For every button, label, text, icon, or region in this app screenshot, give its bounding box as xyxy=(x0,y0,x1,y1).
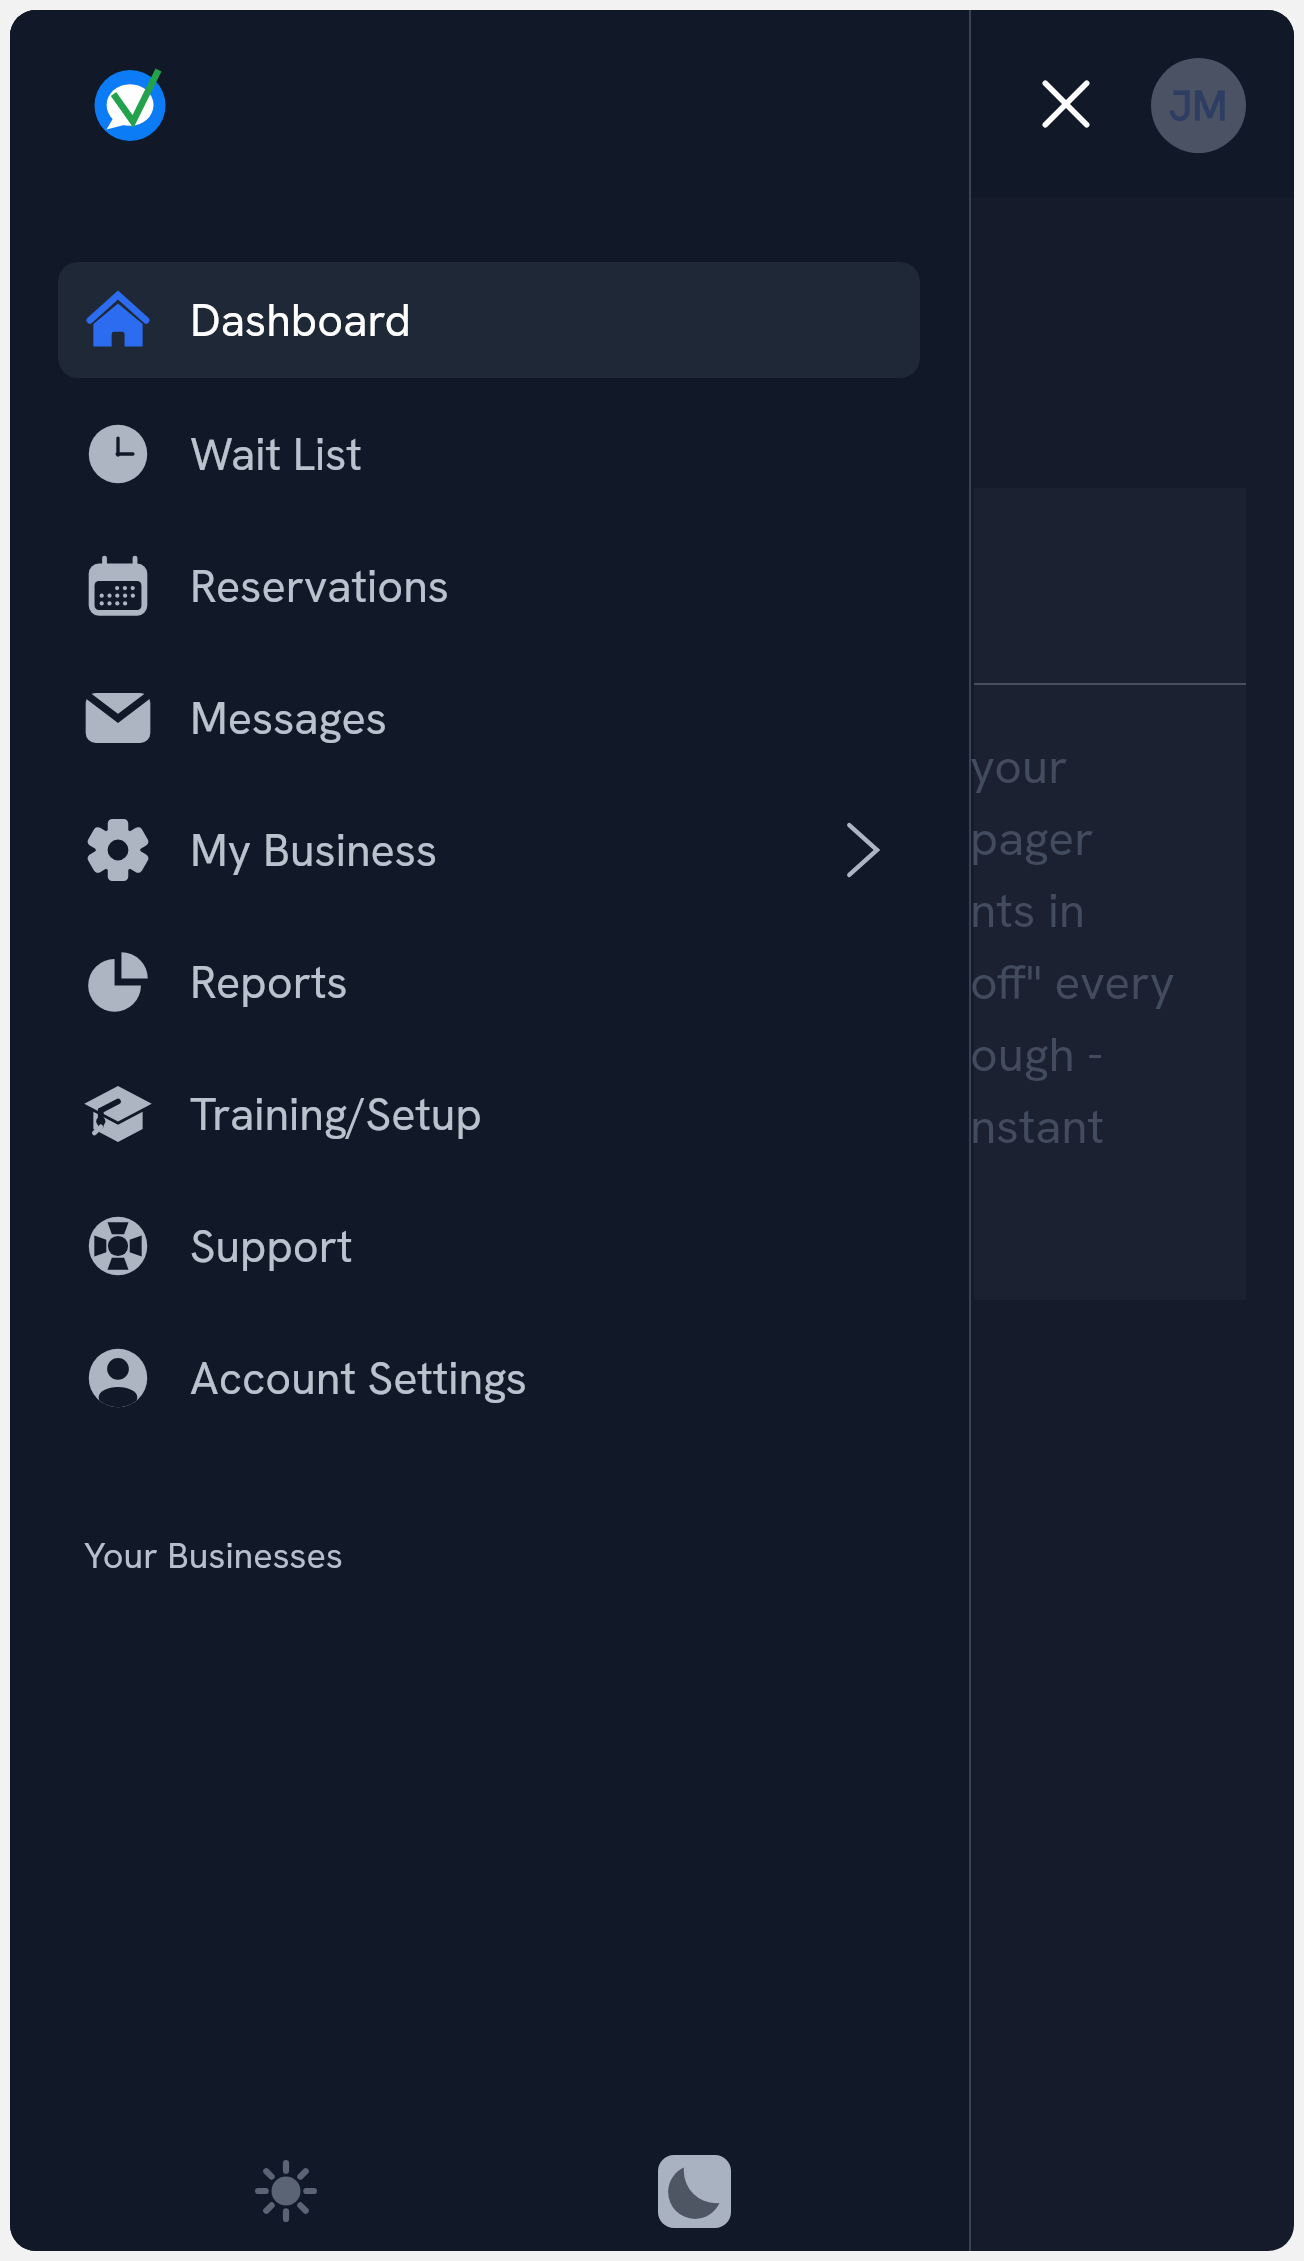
button[interactable]: Support xyxy=(58,1188,920,1304)
staticText: Support xyxy=(190,1217,353,1276)
button[interactable]: JM xyxy=(1151,58,1246,153)
button[interactable]: Close menu xyxy=(1018,56,1114,152)
staticText: Training/Setup xyxy=(190,1085,482,1144)
staticText: off" every xyxy=(970,951,1175,1014)
button[interactable]: Wait List xyxy=(58,396,920,512)
staticText: nts in xyxy=(970,879,1086,942)
staticText: pager xyxy=(970,807,1094,870)
staticText: My Business xyxy=(190,821,438,880)
staticText: Dashboard xyxy=(190,291,411,350)
staticText: Account Settings xyxy=(190,1349,527,1408)
staticText: Your Businesses xyxy=(84,1532,343,1579)
button[interactable]: Messages xyxy=(58,660,920,776)
button[interactable]: Dark theme xyxy=(658,2155,731,2228)
staticText: Reports xyxy=(190,953,348,1012)
staticText: Reservations xyxy=(190,557,449,616)
staticText: Wait List xyxy=(190,425,362,484)
button[interactable]: Account Settings xyxy=(58,1320,920,1436)
staticText: ough - xyxy=(970,1023,1104,1086)
staticText: JM xyxy=(1169,78,1228,133)
staticText: Messages xyxy=(190,689,387,748)
button[interactable]: Dashboard xyxy=(58,262,920,378)
button[interactable]: Reports xyxy=(58,924,920,1040)
button[interactable]: My Business xyxy=(58,792,920,908)
staticText: nstant xyxy=(970,1095,1105,1158)
staticText: your xyxy=(970,735,1068,798)
button[interactable]: Light theme xyxy=(255,2160,317,2222)
button[interactable]: Training/Setup xyxy=(58,1056,920,1172)
button[interactable]: Reservations xyxy=(58,528,920,644)
